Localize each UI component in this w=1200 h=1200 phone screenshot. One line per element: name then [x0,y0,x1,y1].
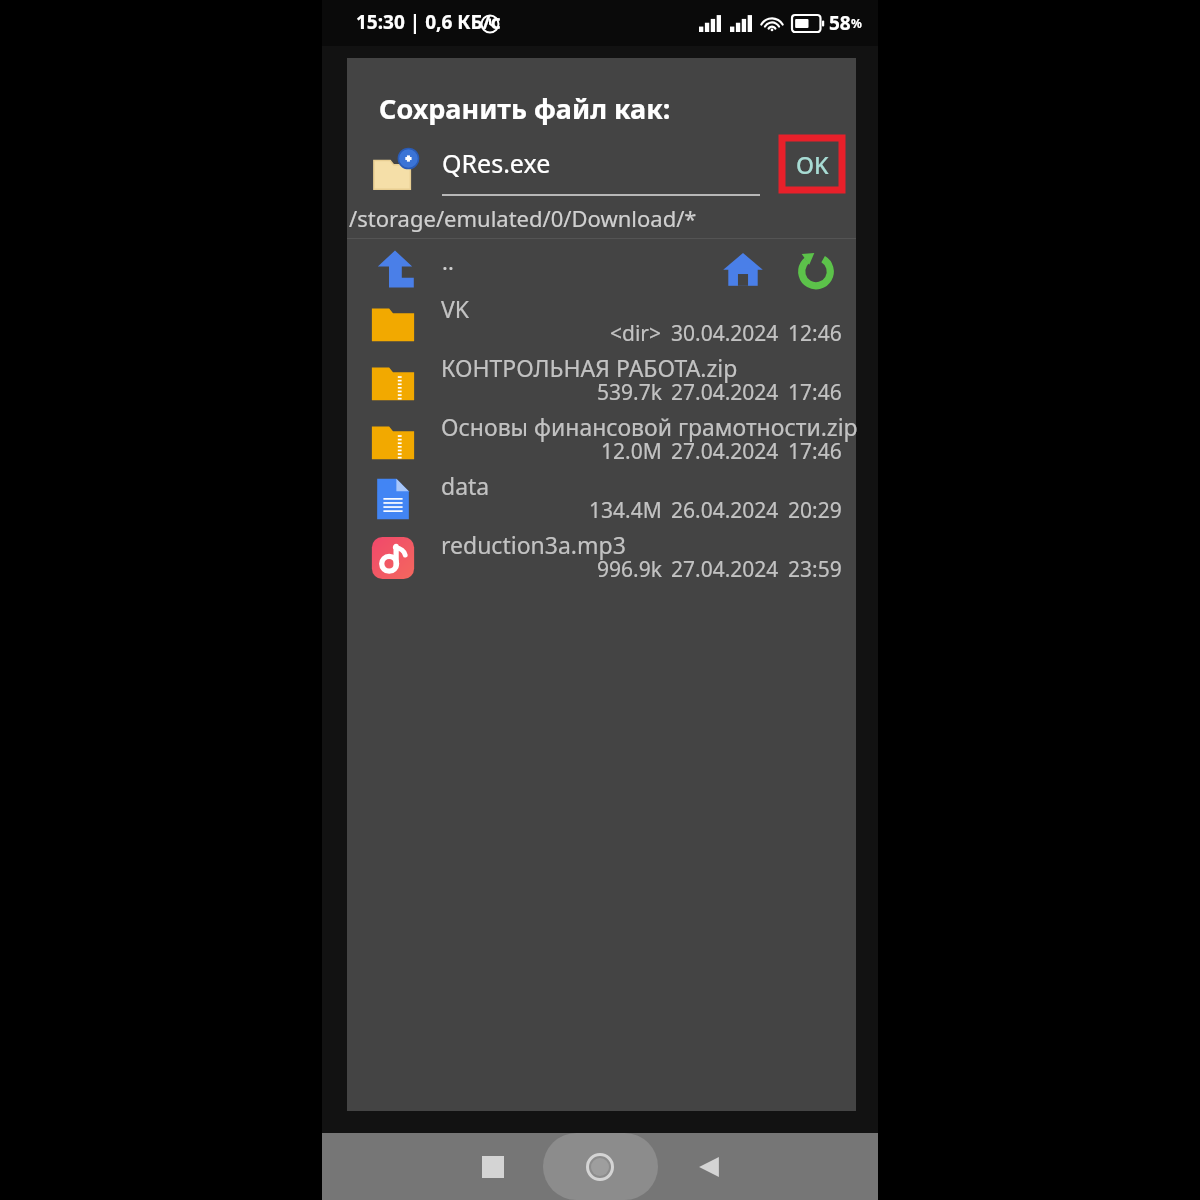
staticText: reduction3a.mp3 [441,529,626,560]
staticText: VK [441,293,470,324]
button[interactable]: QRes.exe [442,144,760,196]
staticText: КОНТРОЛЬНАЯ РАБОТА.zip [441,352,738,383]
button[interactable]: Home [571,1138,629,1196]
staticText: /storage/emulated/0/Download/* [349,203,697,233]
button[interactable]: Create new folder [367,143,423,199]
staticText: Основы финансовой грамотности.zip [441,411,858,442]
staticText: 58 [829,10,851,36]
button[interactable]: data [347,469,856,528]
staticText: <dir> [610,319,662,348]
button[interactable]: Up one level [369,241,425,297]
staticText: 20:29 [788,496,842,525]
staticText: Сохранить файл как: [379,90,671,127]
staticText: .. [442,246,454,276]
staticText: 17:46 [788,437,842,466]
button[interactable]: OK [782,138,842,190]
staticText: 26.04.2024 [671,496,779,525]
staticText: 539.7k [597,378,662,407]
button[interactable]: VK [347,292,856,351]
staticText: QRes.exe [442,146,551,180]
staticText: 12.0M [601,437,662,466]
staticText: 12:46 [788,319,842,348]
staticText: % [851,15,862,31]
button[interactable]: reduction3a.mp3 [347,528,856,587]
staticText: OK [796,149,829,180]
button[interactable]: Back [680,1138,738,1196]
button[interactable]: Recent apps [464,1138,522,1196]
staticText: data [441,470,490,501]
button[interactable]: КОНТРОЛЬНАЯ РАБОТА.zip [347,351,856,410]
staticText: 27.04.2024 [671,555,779,584]
button[interactable]: Refresh [788,241,844,297]
staticText: 30.04.2024 [671,319,779,348]
button[interactable]: Home [715,241,771,297]
staticText: 134.4M [589,496,662,525]
staticText: 996.9k [597,555,662,584]
staticText: 27.04.2024 [671,437,779,466]
staticText: 15:30 | 0,6 КБ/с [356,9,501,35]
staticText: 23:59 [788,555,842,584]
button[interactable]: Основы финансовой грамотности.zip [347,410,856,469]
staticText: 17:46 [788,378,842,407]
staticText: 27.04.2024 [671,378,779,407]
